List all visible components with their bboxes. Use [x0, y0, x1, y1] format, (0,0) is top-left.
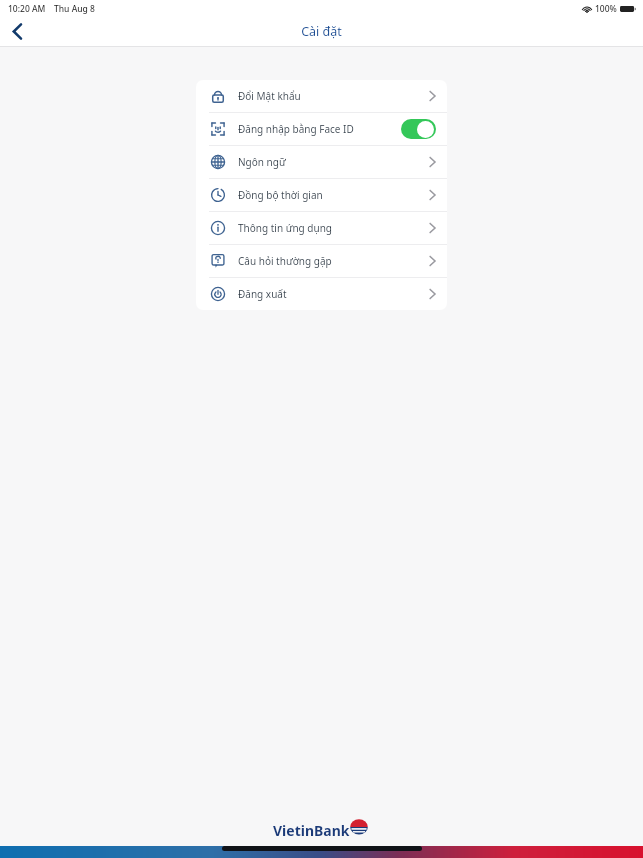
staticText: Đồng bộ thời gian — [238, 188, 323, 202]
button[interactable]: Đổi Mật khẩu — [196, 80, 447, 112]
button[interactable]: Thông tin ứng dụng — [196, 212, 447, 244]
button[interactable]: Câu hỏi thường gặp — [196, 245, 447, 277]
staticText: VietinBank — [273, 821, 350, 840]
button[interactable]: Đăng xuất — [196, 278, 447, 310]
staticText: Thông tin ứng dụng — [238, 221, 333, 235]
staticText: Thu Aug 8 — [54, 3, 95, 15]
staticText: Đăng nhập bằng Face ID — [238, 122, 354, 136]
button[interactable]: Đăng nhập bằng Face ID — [196, 113, 447, 145]
staticText: Ngôn ngữ — [238, 155, 286, 169]
staticText: 10:20 AM — [8, 3, 46, 15]
button[interactable]: Đồng bộ thời gian — [196, 179, 447, 211]
button[interactable]: Ngôn ngữ — [196, 146, 447, 178]
staticText: Câu hỏi thường gặp — [238, 254, 332, 268]
button[interactable]: Face ID toggle — [401, 119, 436, 139]
staticText: Đăng xuất — [238, 287, 287, 301]
staticText: Cài đặt — [301, 23, 342, 40]
staticText: Đổi Mật khẩu — [238, 89, 301, 103]
staticText: 100% — [595, 3, 617, 15]
button[interactable]: Back — [0, 17, 34, 46]
